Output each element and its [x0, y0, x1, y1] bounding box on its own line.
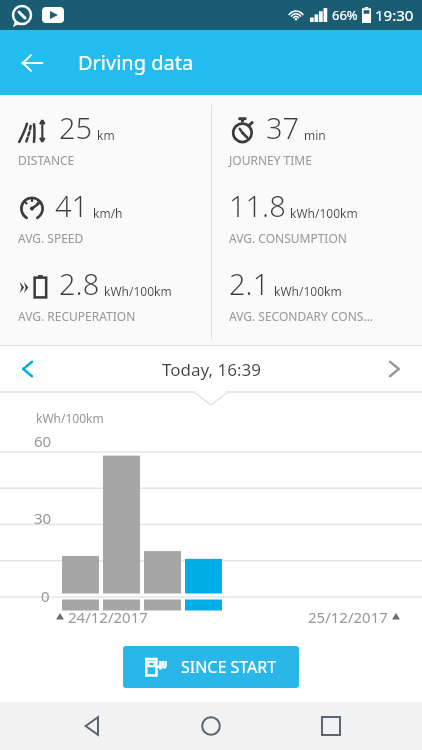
button[interactable]: SINCE START — [123, 646, 299, 688]
staticText: km/h — [93, 205, 123, 221]
staticText: DISTANCE — [18, 152, 75, 168]
staticText: min — [304, 127, 326, 143]
staticText: SINCE START — [181, 656, 277, 678]
staticText: 19:30 — [375, 5, 414, 25]
staticText: 37 — [266, 108, 300, 147]
button[interactable]: Next day — [372, 347, 416, 391]
button[interactable]: Back — [64, 702, 120, 750]
staticText: 60 — [34, 431, 52, 451]
staticText: 2.8 — [59, 264, 100, 303]
button[interactable]: Home — [183, 702, 239, 750]
button[interactable]: Recent apps — [303, 702, 359, 750]
staticText: 0 — [41, 586, 50, 606]
staticText: kWh/100km — [104, 283, 172, 299]
staticText: AVG. RECUPERATION — [18, 308, 136, 324]
staticText: 2.1 — [229, 264, 270, 303]
staticText: Driving data — [78, 49, 194, 76]
staticText: 66% — [332, 6, 358, 24]
staticText: kWh/100km — [36, 410, 104, 426]
staticText: JOURNEY TIME — [229, 152, 312, 168]
staticText: km — [97, 127, 115, 143]
staticText: 25/12/2017 — [308, 607, 388, 627]
staticText: 24/12/2017 — [68, 607, 148, 627]
staticText: kWh/100km — [274, 283, 342, 299]
staticText: AVG. SPEED — [18, 230, 84, 246]
staticText: 11.8 — [229, 186, 286, 225]
staticText: AVG. CONSUMPTION — [229, 230, 347, 246]
staticText: 41 — [55, 186, 89, 225]
staticText: kWh/100km — [290, 205, 358, 221]
button[interactable]: Back — [8, 39, 56, 87]
staticText: AVG. SECONDARY CONS… — [229, 308, 373, 324]
staticText: 30 — [34, 508, 52, 528]
button[interactable]: Previous day — [6, 347, 50, 391]
staticText: Today, 16:39 — [162, 358, 261, 381]
staticText: 25 — [59, 108, 93, 147]
